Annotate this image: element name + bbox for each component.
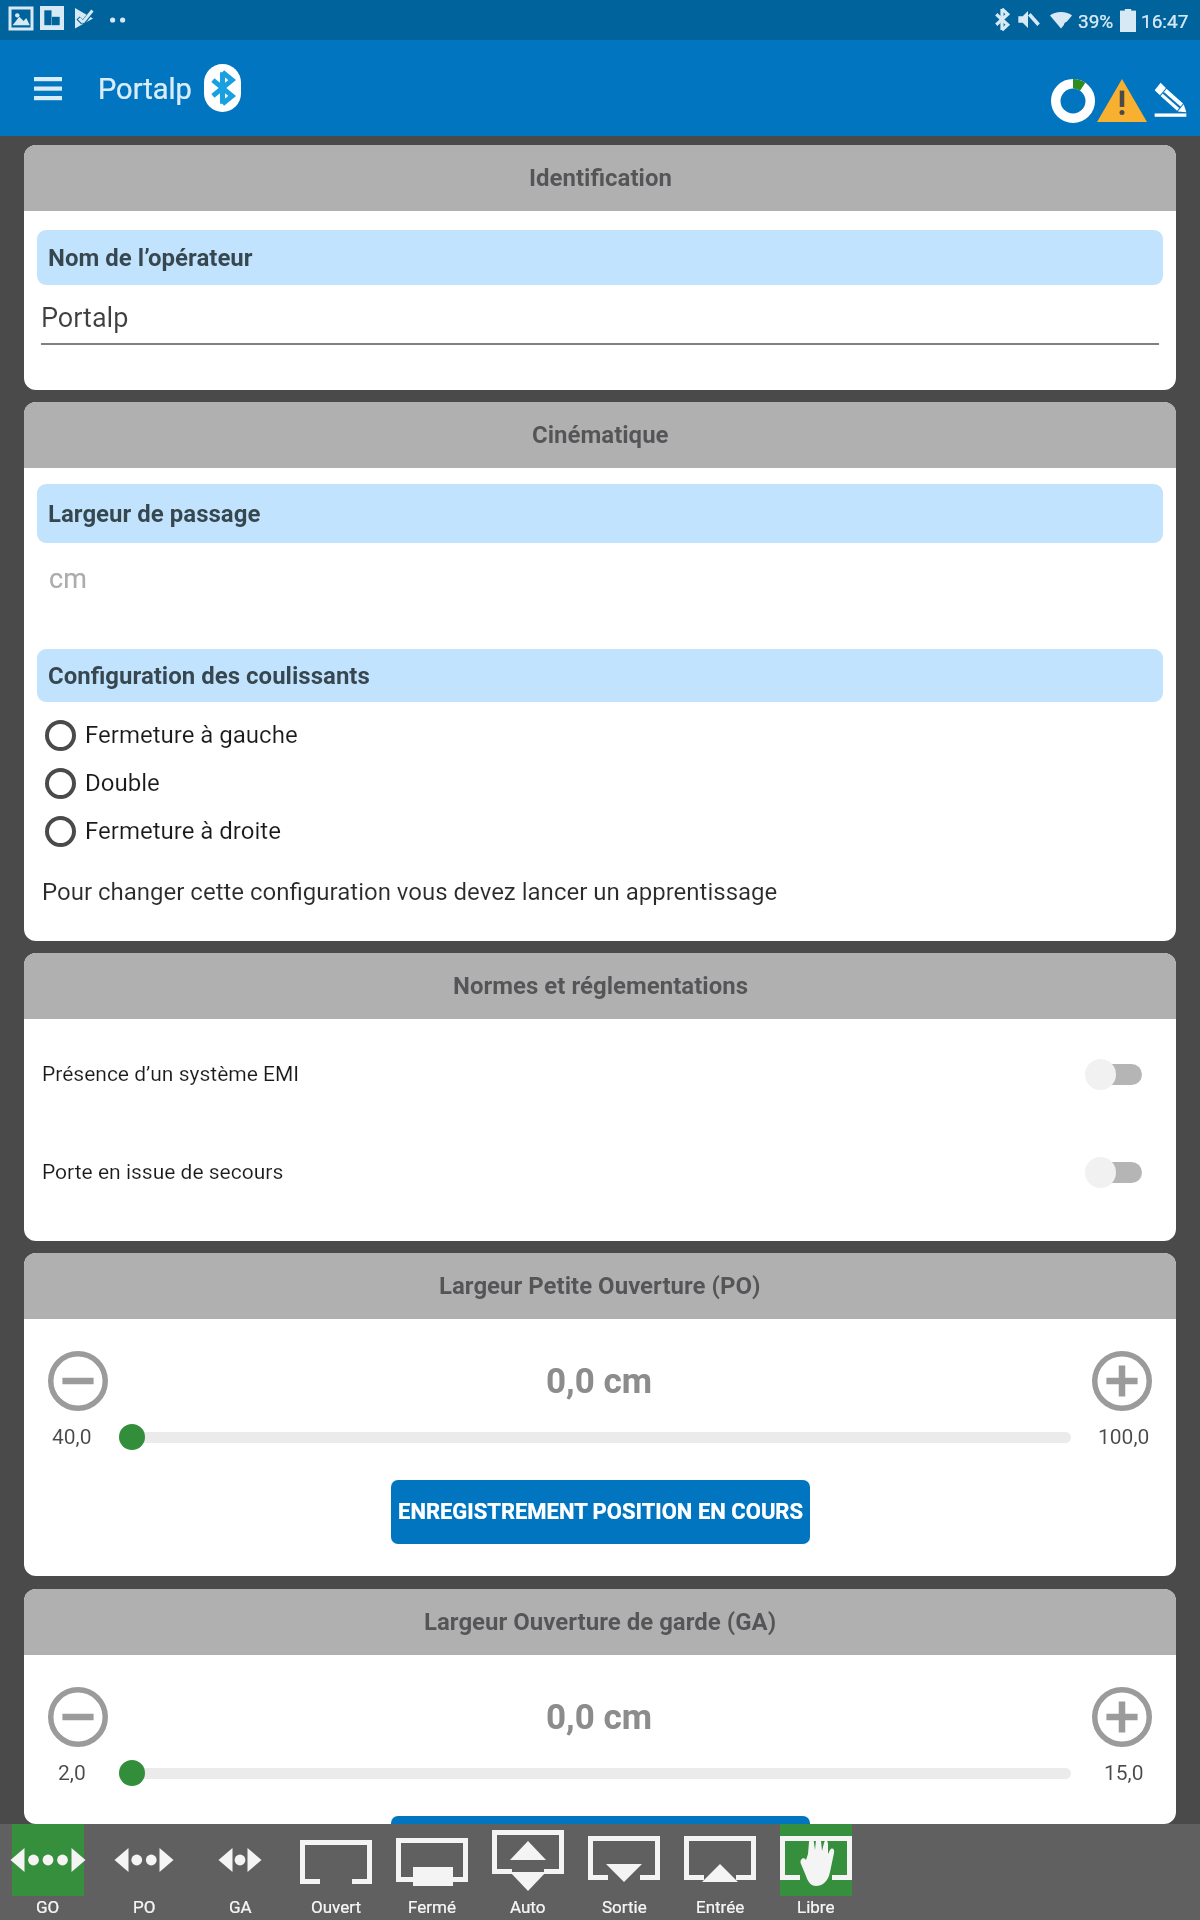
- button[interactable]: Fermeture à droite: [24, 807, 1176, 855]
- button[interactable]: Bluetooth: [204, 64, 241, 112]
- button[interactable]: GO: [0, 1824, 96, 1920]
- button[interactable]: Increase: [1086, 1351, 1158, 1411]
- button[interactable]: Double: [24, 759, 1176, 807]
- staticText: cm: [49, 563, 87, 595]
- button[interactable]: Edit: [1149, 78, 1195, 136]
- button[interactable]: Entrée: [672, 1824, 768, 1920]
- staticText: Identification: [529, 164, 672, 192]
- button[interactable]: Increase: [1086, 1687, 1158, 1747]
- staticText: Fermé: [408, 1897, 456, 1917]
- button[interactable]: [391, 1816, 810, 1824]
- staticText: Entrée: [696, 1897, 745, 1917]
- staticText: Porte en issue de secours: [42, 1160, 284, 1185]
- staticText: Pour changer cette configuration vous de…: [42, 878, 778, 906]
- button[interactable]: Porte en issue de secours: [24, 1154, 1176, 1190]
- button[interactable]: Présence d’un système EMI: [24, 1056, 1176, 1092]
- staticText: Ouvert: [311, 1897, 361, 1917]
- staticText: Normes et réglementations: [453, 972, 748, 1000]
- staticText: GA: [229, 1897, 252, 1917]
- staticText: Libre: [797, 1897, 835, 1917]
- button[interactable]: GA: [192, 1824, 288, 1920]
- button[interactable]: Auto: [480, 1824, 576, 1920]
- staticText: Fermeture à droite: [85, 817, 281, 845]
- staticText: 2,0: [58, 1761, 86, 1786]
- button[interactable]: Fermeture à gauche: [24, 711, 1176, 759]
- staticText: Fermeture à gauche: [85, 721, 298, 749]
- staticText: Portalp: [98, 72, 192, 106]
- button[interactable]: Ouvert: [288, 1824, 384, 1920]
- button[interactable]: Menu: [0, 40, 96, 136]
- staticText: Auto: [510, 1897, 546, 1917]
- button[interactable]: Decrease: [42, 1351, 114, 1411]
- button[interactable]: Warning: [1095, 78, 1149, 136]
- staticText: 15,0: [1104, 1761, 1144, 1786]
- staticText: 0,0 cm: [546, 1361, 653, 1402]
- button[interactable]: Sortie: [576, 1824, 672, 1920]
- staticText: Configuration des coulissants: [48, 662, 370, 690]
- button[interactable]: PO: [96, 1824, 192, 1920]
- staticText: Largeur de passage: [48, 500, 261, 528]
- staticText: 0,0 cm: [546, 1697, 653, 1738]
- staticText: Largeur Petite Ouverture (PO): [439, 1272, 761, 1300]
- staticText: Largeur Ouverture de garde (GA): [424, 1608, 777, 1636]
- staticText: 100,0: [1098, 1425, 1150, 1450]
- button[interactable]: ENREGISTREMENT POSITION EN COURS: [391, 1480, 810, 1544]
- button[interactable]: Decrease: [42, 1687, 114, 1747]
- staticText: Sortie: [602, 1897, 647, 1917]
- staticText: 40,0: [52, 1425, 92, 1450]
- button[interactable]: Libre: [768, 1824, 864, 1920]
- staticText: ENREGISTREMENT POSITION EN COURS: [398, 1499, 803, 1525]
- staticText: PO: [133, 1897, 156, 1917]
- staticText: Portalp: [41, 302, 129, 334]
- staticText: 39%: [1078, 10, 1114, 32]
- staticText: Double: [85, 769, 160, 797]
- button[interactable]: Fermé: [384, 1824, 480, 1920]
- staticText: Nom de l’opérateur: [48, 244, 253, 272]
- staticText: GO: [36, 1897, 60, 1917]
- staticText: 16:47: [1141, 10, 1189, 32]
- staticText: Cinématique: [532, 421, 669, 449]
- button[interactable]: Connection status: [1041, 78, 1105, 136]
- staticText: Présence d’un système EMI: [42, 1062, 300, 1087]
